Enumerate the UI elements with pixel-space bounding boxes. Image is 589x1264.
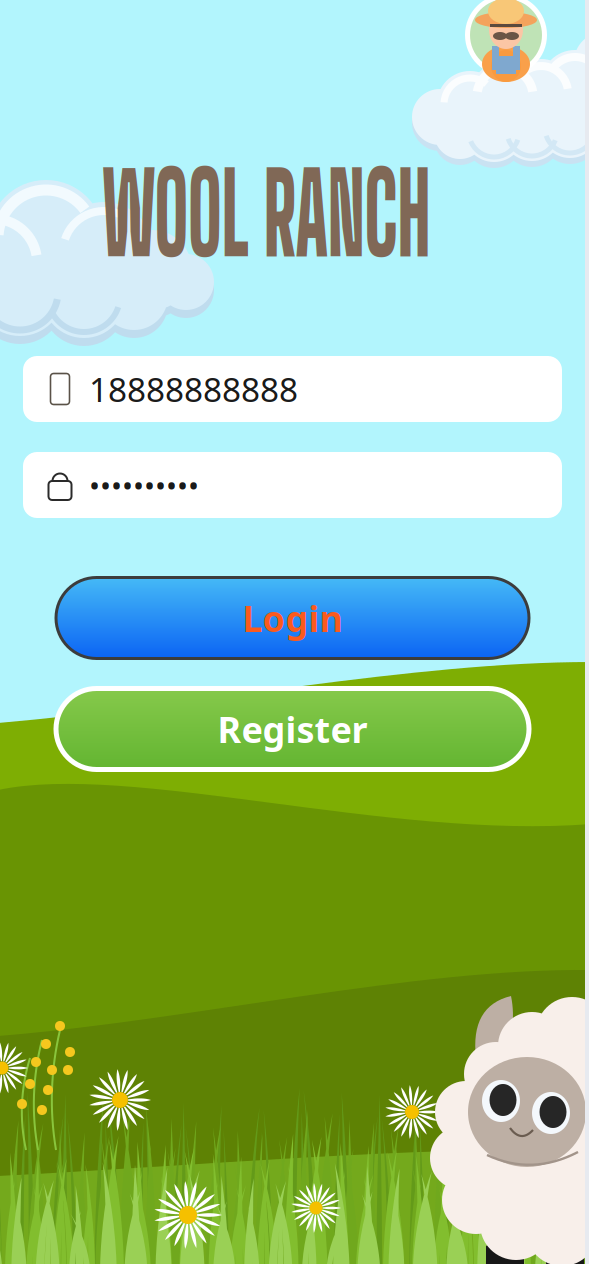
staticText: •••••••••• [89,465,199,504]
staticText: 18888888888 [89,367,298,411]
staticText: WOOL RANCH [0,146,539,280]
button[interactable]: Register [56,688,529,769]
staticText: Register [217,705,367,753]
button[interactable]: Login [56,577,529,658]
staticText: Login [242,594,342,642]
